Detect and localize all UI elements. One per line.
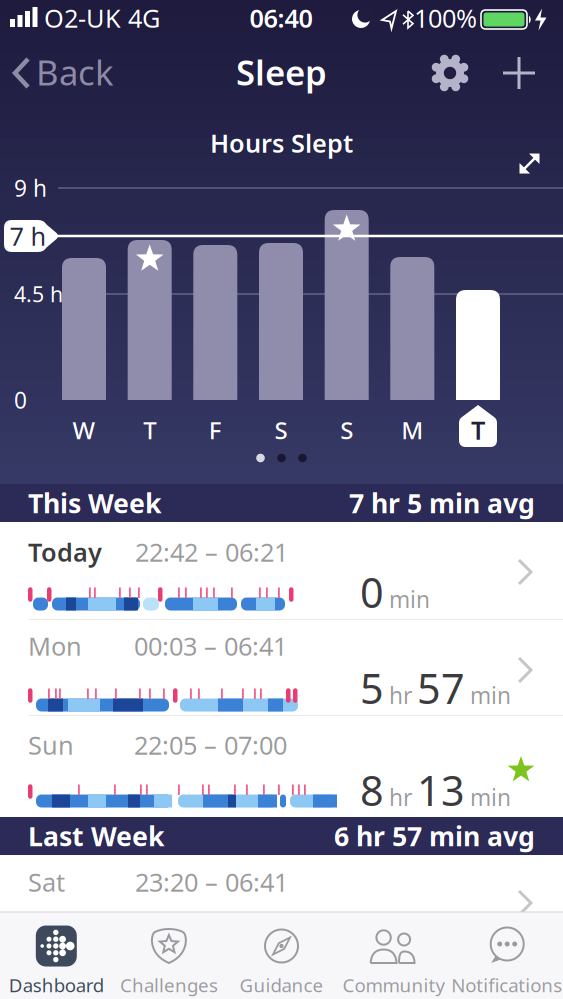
staticText: 57 — [417, 661, 465, 715]
staticText: hr — [389, 782, 412, 812]
staticText: 22:05 – 07:00 — [134, 728, 287, 762]
staticText: F — [209, 414, 222, 446]
staticText: M — [401, 414, 423, 446]
staticText: 06:40 — [249, 1, 312, 35]
staticText: Community — [343, 973, 446, 997]
button[interactable]: Dashboard — [0, 913, 112, 999]
staticText: 7 hr 5 min avg — [349, 485, 535, 521]
staticText: Sat — [28, 865, 65, 899]
staticText: T — [143, 414, 156, 446]
button[interactable] — [428, 51, 472, 95]
staticText: hr — [389, 680, 412, 710]
button[interactable]: Community — [338, 913, 451, 999]
staticText: 6 hr 57 min avg — [334, 818, 535, 854]
staticText: 23:20 – 06:41 — [135, 865, 288, 899]
staticText: 00:03 – 06:41 — [134, 629, 287, 663]
staticText: Sun — [28, 728, 74, 762]
staticText: 100% — [414, 1, 477, 35]
staticText: Challenges — [120, 973, 218, 997]
button[interactable]: Guidance — [225, 913, 337, 999]
staticText: Sleep — [236, 49, 327, 95]
staticText: 0 — [14, 385, 27, 415]
staticText: Last Week — [28, 818, 165, 854]
staticText: 4.5 h — [14, 280, 63, 308]
staticText: S — [274, 414, 287, 446]
staticText: Notifications — [451, 973, 562, 997]
staticText: min — [389, 584, 430, 614]
staticText: Mon — [28, 629, 82, 663]
button[interactable]: Challenges — [113, 913, 225, 999]
staticText: Dashboard — [9, 973, 104, 997]
button[interactable]: Back — [0, 48, 120, 98]
staticText: 5 — [360, 661, 384, 715]
staticText: min — [470, 680, 511, 710]
button[interactable]: Today — [0, 522, 563, 620]
staticText: 13 — [417, 763, 465, 817]
staticText: 4G — [128, 1, 160, 35]
button[interactable]: Sun — [0, 716, 563, 817]
button[interactable]: Mon — [0, 620, 563, 716]
staticText: 7 h — [9, 219, 46, 253]
staticText: 9 h — [14, 173, 47, 203]
staticText: This Week — [28, 485, 162, 521]
button[interactable]: Notifications — [450, 913, 563, 999]
staticText: O2-UK — [44, 1, 121, 35]
staticText: 0 — [360, 565, 384, 619]
staticText: 8 — [360, 763, 384, 817]
button[interactable] — [497, 51, 541, 95]
staticText: W — [72, 414, 95, 446]
staticText: 22:42 – 06:21 — [135, 535, 288, 569]
staticText: T — [471, 413, 485, 447]
staticText: Guidance — [239, 973, 323, 997]
button[interactable]: Sat — [0, 855, 563, 912]
staticText: Back — [36, 49, 114, 95]
staticText: min — [470, 782, 511, 812]
staticText: S — [340, 414, 353, 446]
staticText: Today — [28, 535, 102, 569]
staticText: Hours Slept — [210, 126, 353, 160]
